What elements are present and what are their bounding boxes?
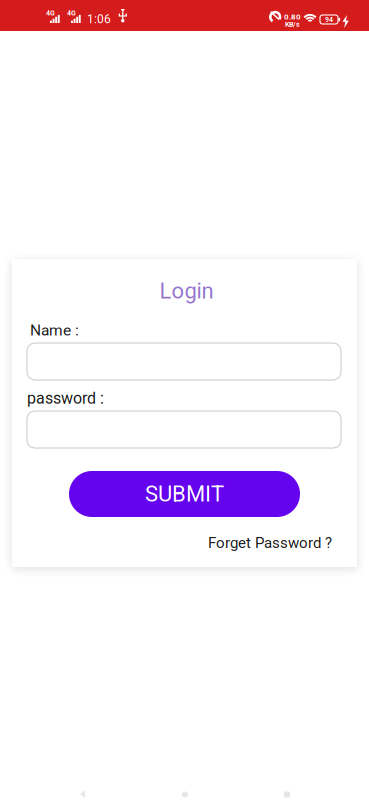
staticText: KB/s bbox=[285, 20, 300, 29]
button[interactable]: SUBMIT bbox=[69, 471, 300, 517]
button[interactable]: Recents bbox=[281, 789, 293, 800]
staticText: 4G bbox=[46, 9, 55, 17]
button[interactable]: Forget Password ? bbox=[208, 534, 332, 552]
staticText: Name : bbox=[30, 321, 79, 339]
staticText: Forget Password ? bbox=[208, 534, 332, 552]
staticText: password : bbox=[27, 389, 104, 408]
button[interactable]: Home bbox=[179, 789, 191, 800]
staticText: 0.80 bbox=[284, 12, 301, 21]
button[interactable]: Back bbox=[76, 789, 89, 800]
staticText: Login bbox=[159, 278, 213, 304]
staticText: 4G bbox=[67, 9, 76, 17]
staticText: SUBMIT bbox=[145, 481, 224, 507]
staticText: 1:06 bbox=[87, 12, 111, 26]
staticText: 94 bbox=[325, 15, 333, 24]
